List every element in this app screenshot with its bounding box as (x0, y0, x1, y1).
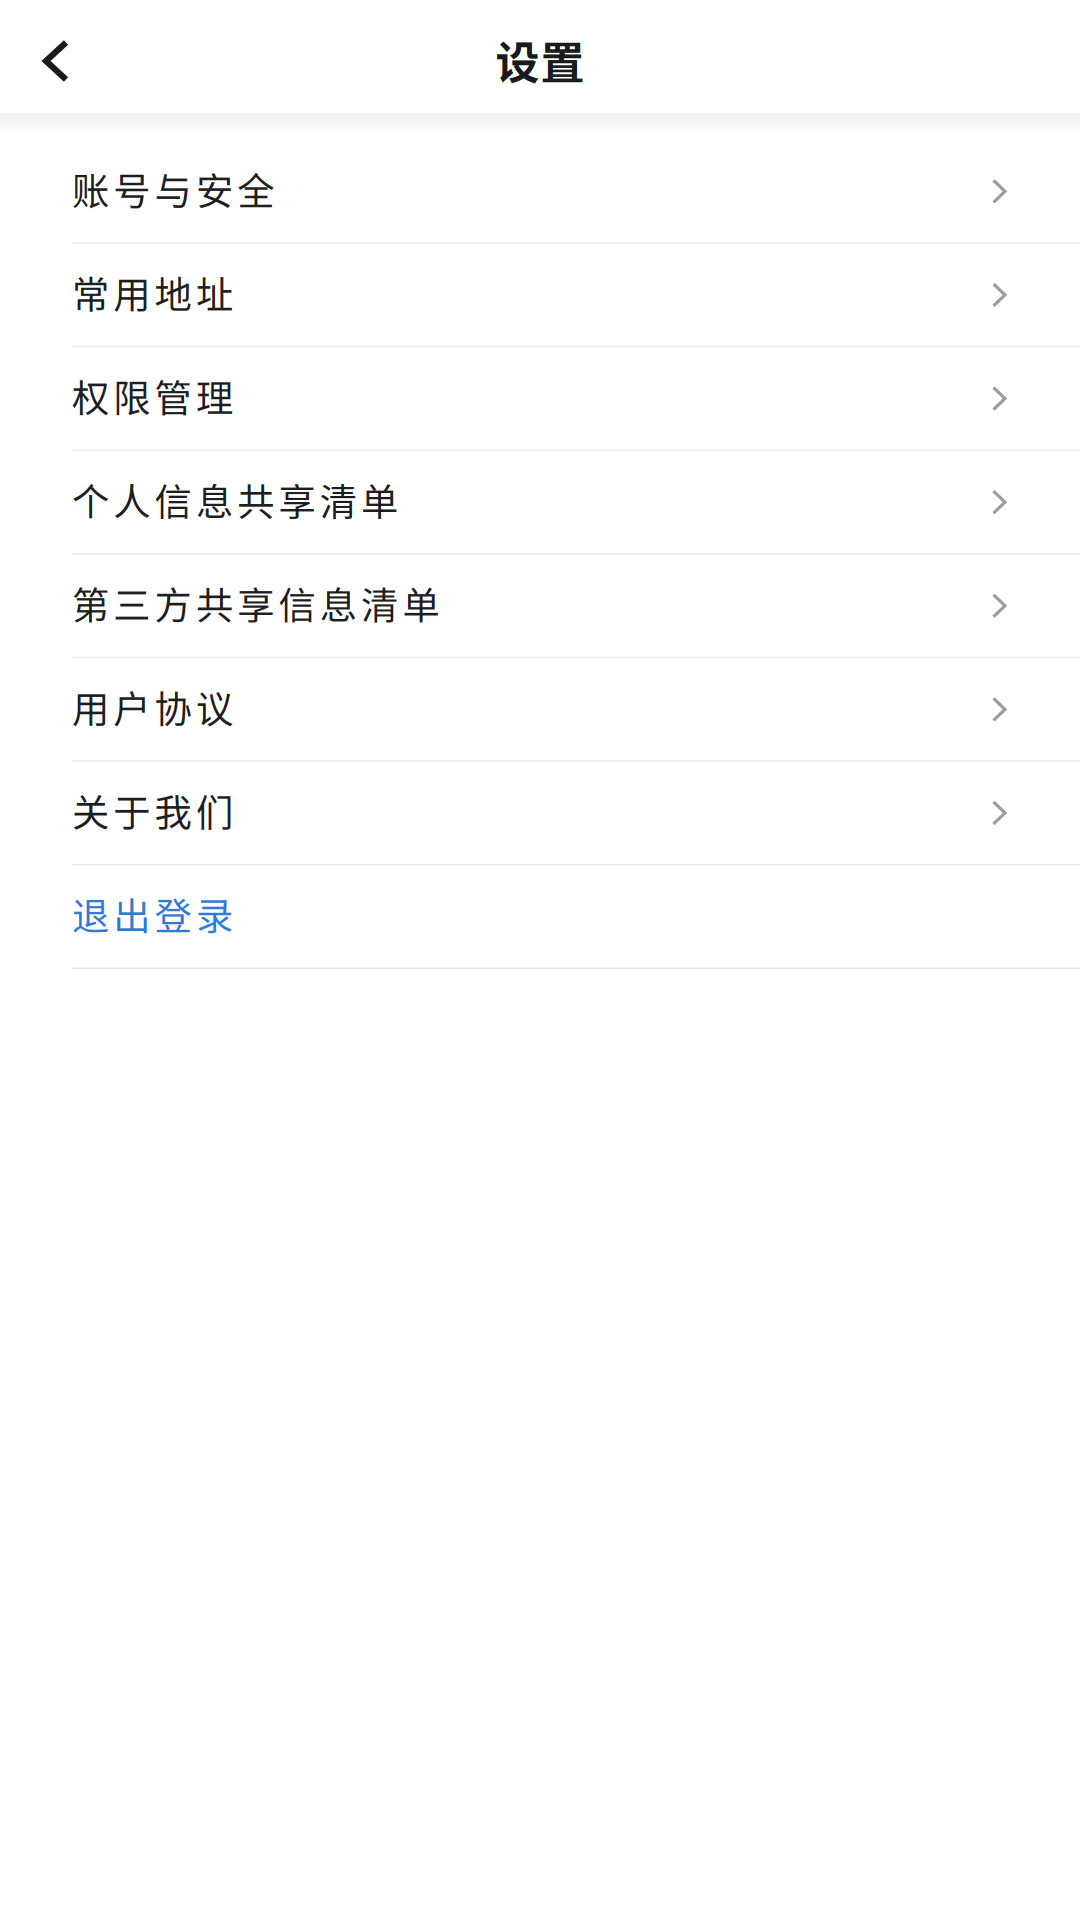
button[interactable]: 个人信息共享清单 (0, 451, 1080, 555)
button[interactable]: 常用地址 (0, 244, 1080, 348)
button[interactable]: 用户协议 (0, 658, 1080, 762)
staticText: 关于我们 (72, 783, 233, 837)
button[interactable]: 权限管理 (0, 348, 1080, 451)
button[interactable]: 关于我们 (0, 762, 1080, 866)
button[interactable]: 账号与安全 (0, 140, 1080, 244)
button[interactable]: 退出登录 (0, 866, 1080, 969)
staticText: 退出登录 (72, 887, 233, 941)
staticText: 用户协议 (72, 680, 233, 734)
button[interactable]: 返回 (0, 0, 112, 113)
staticText: 设置 (495, 28, 584, 92)
button[interactable]: 第三方共享信息清单 (0, 555, 1080, 658)
staticText: 权限管理 (72, 369, 233, 423)
staticText: 账号与安全 (72, 162, 274, 216)
staticText: 常用地址 (72, 265, 233, 319)
staticText: 个人信息共享清单 (72, 473, 398, 527)
staticText: 第三方共享信息清单 (72, 576, 439, 630)
